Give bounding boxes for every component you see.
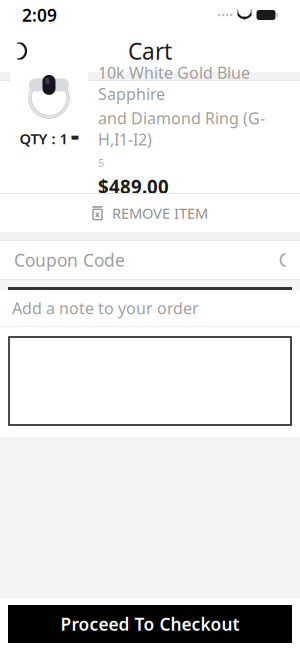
button[interactable]: x: [0, 194, 300, 232]
staticText: $489.00: [98, 174, 169, 199]
staticText: QTY : 1: [19, 129, 67, 148]
staticText: 5: [98, 156, 104, 170]
staticText: 10k White Gold Blue Sapphire: [98, 62, 250, 104]
staticText: REMOVE ITEM: [112, 203, 208, 223]
staticText: and Diamond Ring (G-H,I1-I2): [98, 107, 265, 150]
button[interactable]: Coupon Code: [0, 241, 300, 279]
staticText: Subtotal:: [98, 206, 159, 225]
staticText: 2:09: [22, 3, 57, 26]
button[interactable]: Order note: [0, 327, 300, 437]
staticText: x: [95, 209, 100, 220]
staticText: Cart: [128, 36, 172, 66]
button[interactable]: Proceed To Checkout: [8, 605, 292, 643]
staticText: Proceed To Checkout: [60, 612, 239, 635]
button[interactable]: Back: [0, 30, 46, 72]
staticText: Coupon Code: [14, 248, 125, 271]
staticText: $489.00: [163, 205, 221, 226]
staticText: Add a note to your order: [12, 297, 199, 319]
